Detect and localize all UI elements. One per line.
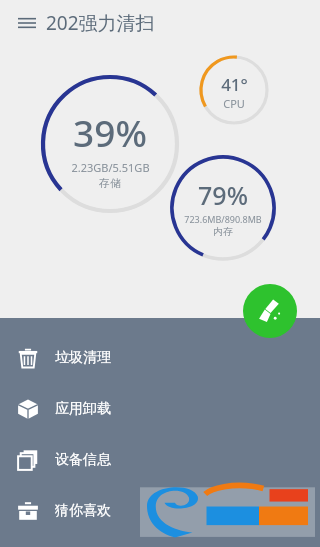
staticText: 39%	[73, 107, 147, 157]
button[interactable]: 设备信息	[0, 434, 320, 485]
button[interactable]: Menu	[8, 4, 46, 42]
staticText: 2.23GB/5.51GB	[71, 160, 150, 175]
staticText: 内存	[213, 225, 233, 238]
button[interactable]: 应用卸载	[0, 383, 320, 434]
staticText: 723.6MB/890.8MB	[184, 213, 262, 225]
staticText: 41°	[221, 73, 248, 96]
staticText: 设备信息	[55, 451, 111, 469]
staticText: 202强力清扫	[46, 10, 155, 36]
staticText: 应用卸载	[55, 400, 111, 418]
button[interactable]: 垃圾清理	[0, 332, 320, 383]
staticText: 79%	[198, 178, 248, 212]
button[interactable]: 猜你喜欢	[0, 485, 320, 536]
button[interactable]: Clean now	[243, 284, 297, 338]
staticText: 存储	[99, 176, 121, 190]
staticText: 垃圾清理	[55, 349, 111, 367]
staticText: 猜你喜欢	[55, 502, 111, 520]
staticText: CPU	[223, 96, 245, 111]
